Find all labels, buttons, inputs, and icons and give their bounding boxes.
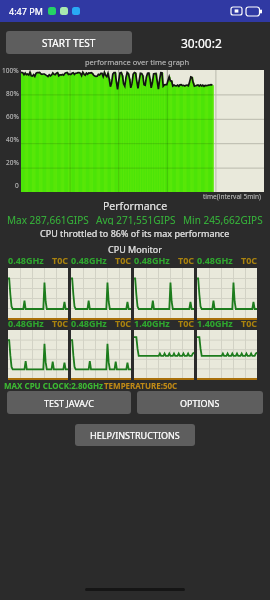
button[interactable]: OPTIONS: [137, 391, 263, 414]
staticText: Max 287,661GIPS: [7, 213, 89, 225]
staticText: Min 245,662GIPS: [183, 213, 263, 225]
staticText: 4:47 PM: [9, 5, 43, 17]
staticText: 0.48GHz: [71, 317, 107, 329]
staticText: CPU Monitor: [108, 243, 162, 255]
staticText: Avg 271,551GIPS: [96, 213, 176, 225]
staticText: T0C: [241, 254, 258, 266]
staticText: time(interval 5min): [203, 192, 261, 201]
staticText: T0C: [178, 254, 195, 266]
staticText: T0C: [115, 254, 132, 266]
staticText: 0.48GHz: [134, 254, 170, 266]
other: No SIM: [231, 7, 242, 15]
staticText: TEMPERATURE:50C: [104, 380, 178, 391]
staticText: CPU throttled to 86% of its max performa…: [40, 227, 230, 239]
staticText: 20%: [6, 158, 19, 167]
staticText: 80%: [6, 89, 19, 98]
staticText: T0C: [52, 317, 69, 329]
staticText: 40%: [6, 135, 19, 144]
staticText: MAX CPU CLOCK:2.80GHz: [4, 380, 104, 391]
staticText: 30:00:2: [181, 35, 222, 51]
staticText: performance over time graph: [85, 57, 190, 67]
staticText: 0.48GHz: [197, 254, 233, 266]
staticText: 0.48GHz: [8, 317, 44, 329]
staticText: TEST JAVA/C: [44, 397, 94, 409]
staticText: 0.48GHz: [8, 254, 44, 266]
button[interactable]: TEST JAVA/C: [7, 391, 131, 414]
other: Battery: [246, 7, 262, 16]
staticText: T0C: [178, 317, 195, 329]
staticText: 0: [15, 181, 19, 190]
staticText: HELP/INSTRUCTIONS: [90, 429, 180, 441]
staticText: T0C: [52, 254, 69, 266]
staticText: T0C: [115, 317, 132, 329]
staticText: T0C: [241, 317, 258, 329]
staticText: 60%: [6, 112, 19, 121]
button[interactable]: START TEST: [6, 31, 132, 54]
staticText: START TEST: [42, 36, 96, 50]
staticText: 1.40GHz: [197, 317, 233, 329]
staticText: 1.40GHz: [134, 317, 170, 329]
staticText: OPTIONS: [180, 397, 220, 409]
button[interactable]: HELP/INSTRUCTIONS: [75, 424, 195, 446]
staticText: 100%: [2, 66, 19, 75]
staticText: Performance: [103, 199, 168, 212]
staticText: 0.48GHz: [71, 254, 107, 266]
